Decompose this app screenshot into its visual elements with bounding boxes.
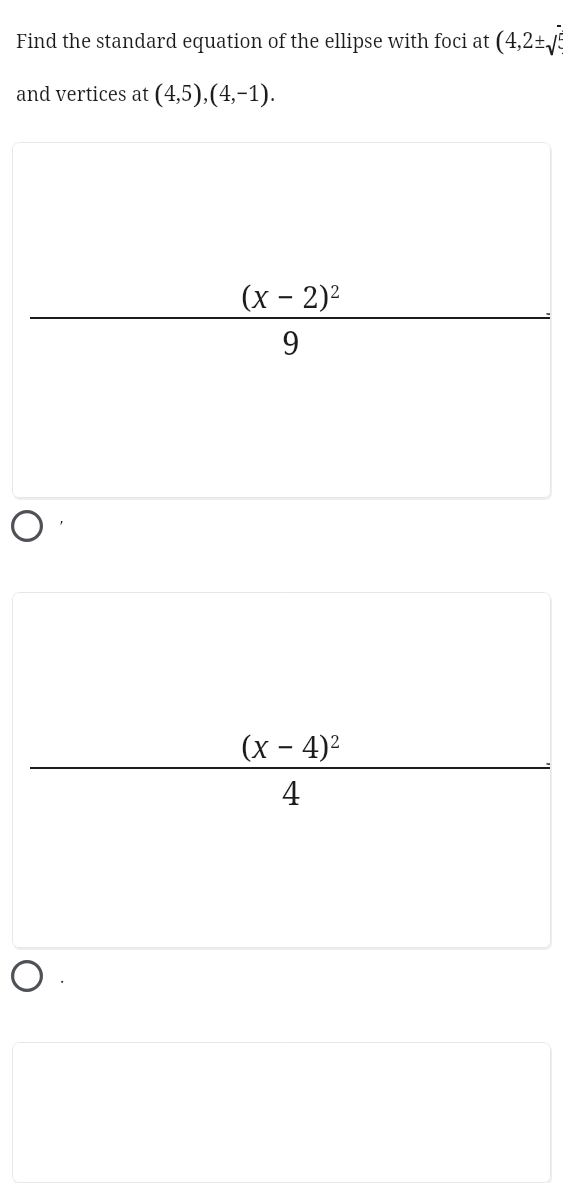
staticText: ) [260, 75, 270, 112]
staticText: ) [319, 726, 330, 767]
staticText: Find the standard equation of the ellips… [16, 28, 495, 54]
staticText: 2 [330, 279, 341, 304]
staticText: ( [495, 22, 505, 59]
staticText: 2 [302, 276, 319, 317]
staticText: x [252, 276, 269, 317]
staticText: ) [193, 75, 203, 112]
button[interactable]: ( [12, 592, 551, 948]
staticText: and vertices at [16, 81, 154, 107]
staticText: . [60, 965, 65, 988]
button[interactable]: Select this answer [8, 957, 67, 995]
staticText: 9 [282, 321, 300, 365]
staticText: 4,−1 [219, 79, 260, 108]
staticText: 2 [330, 729, 341, 754]
staticText: ± [534, 26, 546, 55]
staticText: ( [241, 726, 252, 767]
button[interactable]: Select this answer [8, 507, 66, 545]
staticText: 4 [282, 771, 300, 815]
staticText: , [203, 79, 209, 108]
staticText: − [269, 276, 302, 317]
button[interactable]: ( [12, 142, 551, 498]
staticText: ) [319, 276, 330, 317]
staticText: − [269, 726, 302, 767]
staticText: ( [241, 276, 252, 317]
staticText: ( [154, 75, 164, 112]
staticText: 4 [302, 726, 319, 767]
staticText: ( [209, 75, 219, 112]
staticText: x [252, 726, 269, 767]
staticText: ′ [60, 515, 64, 538]
staticText: 5 [557, 27, 561, 56]
staticText: 4,5 [164, 79, 193, 108]
staticText: . [270, 79, 276, 108]
staticText: 4,2 [505, 26, 534, 55]
button[interactable] [12, 1042, 551, 1183]
